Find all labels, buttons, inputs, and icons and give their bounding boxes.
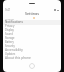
button[interactable]: About this phone — [3, 56, 61, 60]
button[interactable]: Sound — [3, 32, 61, 36]
staticText: Account — [5, 17, 15, 20]
staticText: Settings — [25, 11, 39, 15]
button[interactable]: Security — [3, 44, 61, 48]
staticText: Display — [5, 28, 14, 32]
button[interactable]: Updates — [3, 52, 61, 56]
button[interactable]: Accessibility — [3, 48, 61, 52]
button[interactable]: Home — [29, 63, 35, 69]
button[interactable]: Battery — [3, 40, 61, 44]
staticText: Accessibility — [5, 48, 23, 52]
button[interactable]: Display — [3, 28, 61, 32]
staticText: Notifications — [5, 20, 23, 24]
staticText: Security — [5, 44, 15, 48]
staticText: Battery — [5, 40, 14, 44]
button[interactable]: Storage — [3, 36, 61, 40]
staticText: Privacy — [5, 24, 15, 28]
button[interactable]: Notifications — [3, 20, 61, 24]
staticText: Updates — [5, 52, 16, 56]
staticText: Storage — [5, 36, 15, 40]
staticText: Sound — [5, 32, 13, 36]
staticText: 9:41 — [5, 8, 11, 11]
staticText: About this phone — [5, 56, 31, 60]
button[interactable]: Privacy — [3, 24, 61, 28]
button[interactable]: Account — [3, 16, 61, 20]
